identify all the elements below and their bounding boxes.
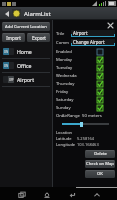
staticText: Airport [73, 30, 88, 36]
staticText: Longitude [56, 142, 77, 147]
button[interactable]: Delete [85, 150, 115, 158]
button[interactable]: Saturday [56, 96, 115, 104]
button[interactable]: Off [2, 73, 50, 86]
button[interactable]: Sunday [56, 104, 115, 112]
staticText: 103.168463 [77, 142, 99, 147]
staticText: OK [97, 171, 103, 177]
button[interactable]: Add Current Location [2, 22, 50, 31]
button[interactable]: Hide keyboard [91, 189, 102, 200]
button[interactable]: Check on Map [85, 160, 115, 168]
button[interactable]: Airport [71, 30, 115, 37]
button[interactable]: Home [41, 189, 52, 200]
staticText: OFF [9, 78, 14, 82]
staticText: Enabled [56, 49, 77, 55]
staticText: Change Airport [73, 39, 105, 45]
button[interactable]: Change Airport [71, 39, 115, 46]
button[interactable]: Wednesday [56, 72, 115, 80]
button[interactable]: Up [2, 9, 11, 18]
staticText: Airport [17, 76, 35, 83]
staticText: Add Current Location [5, 24, 47, 30]
staticText: Check on Map [86, 161, 114, 167]
staticText: Latitude [56, 136, 77, 141]
button[interactable]: Back [66, 189, 77, 200]
staticText: Location [56, 130, 77, 135]
button[interactable]: Tuesday [56, 64, 115, 72]
button[interactable]: Recents [16, 189, 27, 200]
staticText: Thursday [56, 81, 77, 87]
staticText: Home [17, 48, 32, 55]
staticText: OnAirRange 50 meters [56, 113, 102, 119]
button[interactable]: On [3, 62, 14, 69]
staticText: Title [56, 31, 71, 37]
button[interactable]: On [3, 48, 14, 55]
staticText: Export [32, 35, 46, 41]
button[interactable]: OK [85, 170, 115, 178]
button[interactable]: Friday [56, 88, 115, 96]
button[interactable]: Import [2, 33, 25, 42]
staticText: Monday [56, 57, 77, 63]
staticText: AlarmList [24, 10, 51, 18]
button[interactable]: On [2, 59, 50, 72]
staticText: Friday [56, 89, 77, 95]
button[interactable]: Range slider [62, 121, 109, 127]
button[interactable]: Export [27, 33, 50, 42]
staticText: Delete [94, 151, 107, 157]
button[interactable]: Close [106, 21, 115, 30]
staticText: ON [4, 50, 8, 54]
button[interactable]: Monday [56, 56, 115, 64]
button[interactable]: Thursday [56, 80, 115, 88]
staticText: 5.258164 [77, 136, 95, 141]
staticText: Office [17, 62, 32, 69]
button[interactable]: Enabled [56, 48, 115, 56]
button[interactable]: On [2, 45, 50, 58]
staticText: Sunday [56, 105, 77, 111]
staticText: Saturday [56, 97, 77, 103]
staticText: Import [6, 35, 21, 41]
staticText: Tuesday [56, 65, 77, 71]
staticText: Comment [56, 40, 71, 46]
staticText: ON [4, 64, 8, 68]
staticText: Wednesday [56, 73, 77, 79]
button[interactable]: Off [3, 76, 14, 83]
